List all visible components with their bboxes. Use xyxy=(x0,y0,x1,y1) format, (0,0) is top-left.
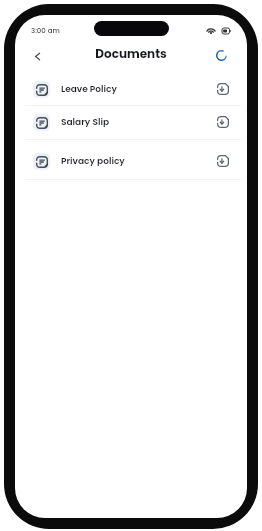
button[interactable]: Download Privacy policy xyxy=(214,152,232,170)
button[interactable]: Back xyxy=(29,48,46,65)
staticText: Documents xyxy=(95,45,167,62)
button[interactable]: Refresh xyxy=(213,47,230,64)
staticText: Leave Policy xyxy=(61,83,117,96)
button[interactable]: Salary Slip xyxy=(15,105,247,139)
button[interactable]: Leave Policy xyxy=(15,72,247,106)
button[interactable]: Privacy policy xyxy=(15,144,247,178)
button[interactable]: Download Leave Policy xyxy=(214,80,232,98)
button[interactable]: Download Salary Slip xyxy=(214,113,232,131)
staticText: 3:00 am xyxy=(31,26,60,36)
staticText: Privacy policy xyxy=(61,155,125,168)
staticText: Salary Slip xyxy=(61,116,109,129)
